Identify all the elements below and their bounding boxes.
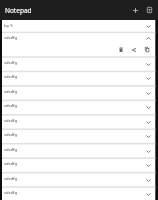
- button[interactable]: sdsdfg: [2, 71, 155, 85]
- button[interactable]: sdsdfg: [2, 115, 155, 129]
- button[interactable]: Grid view: [142, 3, 156, 17]
- button[interactable]: Share: [127, 45, 140, 54]
- staticText: sdsdfg: [4, 89, 18, 95]
- button[interactable]: sdsdfg: [2, 187, 155, 200]
- button[interactable]: sdsdfg: [2, 32, 155, 45]
- button[interactable]: sdsdfg: [2, 173, 155, 187]
- button[interactable]: sdsdfg: [2, 86, 155, 100]
- button[interactable]: sdsdfg: [2, 100, 155, 114]
- staticText: hp 9: [4, 23, 13, 29]
- staticText: sdsdfg: [4, 60, 18, 66]
- button[interactable]: sdsdfg: [2, 158, 155, 172]
- staticText: sdsdfg: [4, 176, 18, 182]
- button[interactable]: Add note: [128, 3, 142, 17]
- button[interactable]: Delete: [114, 45, 127, 54]
- button[interactable]: hp 9: [2, 20, 155, 33]
- button[interactable]: sdsdfg: [2, 129, 155, 143]
- staticText: sdsdfg: [4, 118, 18, 124]
- staticText: sdsdfg: [4, 147, 18, 153]
- staticText: sdsdfg: [4, 103, 18, 109]
- staticText: sdsdfg: [4, 132, 18, 138]
- button[interactable]: Copy: [140, 45, 153, 54]
- staticText: sdsdfg: [4, 35, 18, 41]
- staticText: sdsdfg: [4, 161, 18, 167]
- staticText: Notepad: [5, 6, 32, 15]
- button[interactable]: sdsdfg: [2, 144, 155, 158]
- staticText: sdsdfg: [4, 190, 18, 196]
- staticText: sdsdfg: [4, 74, 18, 80]
- button[interactable]: sdsdfg: [2, 57, 155, 71]
